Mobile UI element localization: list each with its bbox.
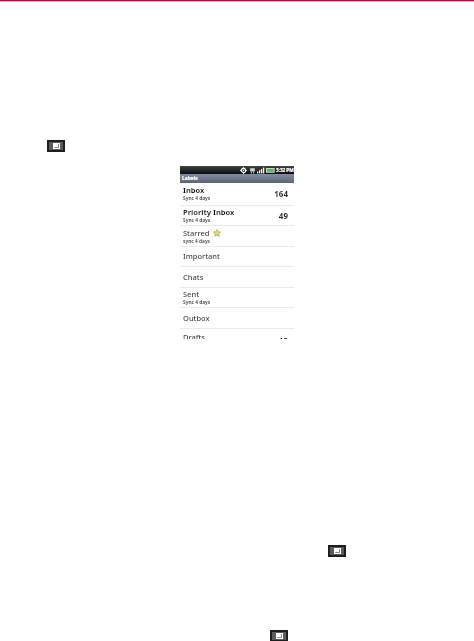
staticText: Labels (182, 175, 198, 182)
staticText: Inbox (183, 185, 205, 195)
staticText: Sync 4 days (183, 195, 211, 202)
staticText: Starred (183, 228, 210, 238)
staticText: Sent (183, 289, 200, 299)
staticText: Sync 4 days (183, 299, 211, 306)
button[interactable]: Labels (180, 174, 294, 183)
staticText: Chats (183, 272, 204, 282)
button[interactable]: Sent (180, 287, 294, 307)
staticText: Outbox (183, 313, 210, 323)
button[interactable]: Inbox (180, 183, 294, 204)
button[interactable]: Priority Inbox (180, 205, 294, 225)
button[interactable]: Image placeholder (330, 547, 344, 555)
staticText: 49 (278, 210, 288, 221)
staticText: Drafts (183, 332, 205, 339)
staticText: Priority Inbox (183, 207, 235, 217)
button[interactable]: Important (180, 246, 294, 266)
staticText: Important (183, 251, 220, 261)
staticText: 13 (278, 335, 288, 339)
staticText: 3:32 PM (276, 167, 294, 173)
button[interactable]: Image placeholder (49, 142, 63, 150)
staticText: sync 4 days (183, 238, 211, 245)
button[interactable]: Starred (180, 226, 294, 246)
button[interactable]: Image placeholder (272, 632, 286, 640)
button[interactable]: Drafts (180, 329, 294, 339)
button[interactable]: Outbox (180, 308, 294, 328)
staticText: 164 (274, 188, 288, 199)
staticText: Sync 4 days (183, 217, 211, 224)
button[interactable]: Chats (180, 267, 294, 287)
